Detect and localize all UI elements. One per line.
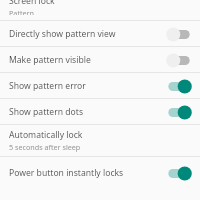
button[interactable]: Screen lock — [0, 0, 200, 20]
button[interactable]: Directly show pattern view — [162, 22, 196, 46]
button[interactable]: Show pattern dots — [162, 100, 196, 124]
button[interactable]: Show pattern error — [162, 74, 196, 98]
button[interactable]: Power button instantly locks — [162, 161, 196, 185]
staticText: Screen lock — [9, 0, 55, 7]
staticText: Make pattern visible — [9, 54, 91, 66]
button[interactable]: Make pattern visible — [162, 48, 196, 72]
staticText: Pattern — [9, 8, 35, 15]
button[interactable]: Automatically lock — [0, 125, 200, 156]
staticText: Directly show pattern view — [9, 28, 116, 40]
button[interactable]: Make pattern visible — [0, 47, 200, 72]
button[interactable]: Power button instantly locks — [0, 157, 200, 188]
button[interactable]: Show pattern dots — [0, 99, 200, 124]
button[interactable]: Show pattern error — [0, 73, 200, 98]
staticText: Automatically lock — [9, 129, 83, 141]
staticText: Show pattern error — [9, 80, 86, 92]
staticText: Show pattern dots — [9, 106, 84, 118]
staticText: 5 seconds after sleep — [9, 142, 81, 152]
staticText: Power button instantly locks — [9, 167, 124, 179]
button[interactable]: Directly show pattern view — [0, 21, 200, 46]
